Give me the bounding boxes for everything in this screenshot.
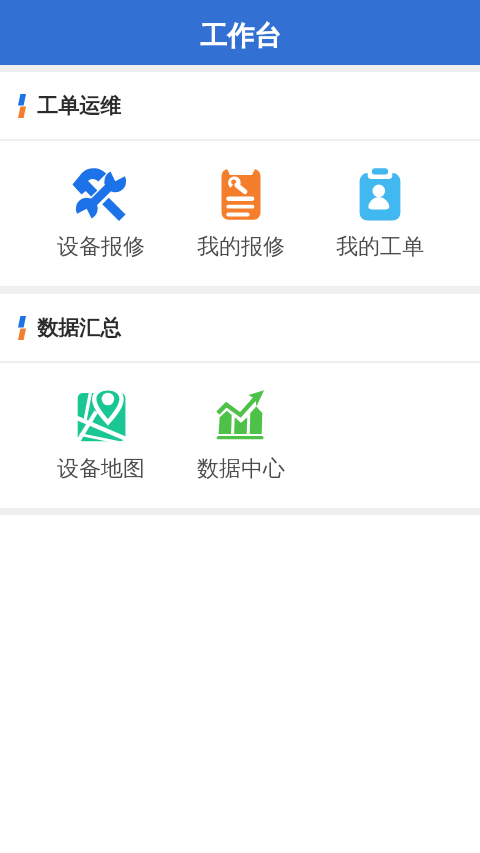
staticText: 设备报修 (57, 233, 145, 261)
other: 我的报修 (211, 165, 271, 225)
other: 设备地图 (71, 387, 131, 447)
other: 数据中心 (211, 387, 271, 447)
button[interactable]: 设备报修 (31, 141, 171, 286)
staticText: 工单运维 (37, 93, 121, 119)
staticText: 数据中心 (197, 455, 285, 483)
button[interactable]: 数据中心 (171, 363, 310, 508)
staticText: 工作台 (200, 19, 281, 53)
button[interactable]: 设备地图 (31, 363, 171, 508)
staticText: 我的工单 (336, 233, 424, 261)
other: 设备报修 (71, 165, 131, 225)
other: 我的工单 (350, 165, 410, 225)
button[interactable]: 我的报修 (171, 141, 310, 286)
staticText: 数据汇总 (37, 315, 121, 341)
staticText: 设备地图 (57, 455, 145, 483)
staticText: 我的报修 (197, 233, 285, 261)
button[interactable]: 我的工单 (310, 141, 449, 286)
